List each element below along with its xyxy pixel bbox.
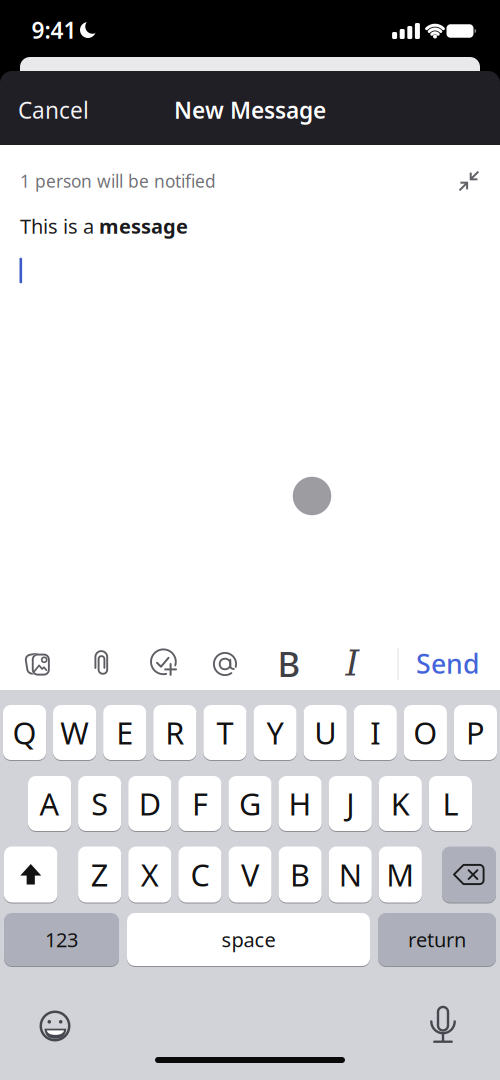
button[interactable]: Delete: [442, 846, 496, 903]
button[interactable]: G: [228, 775, 272, 831]
button[interactable]: Z: [78, 846, 121, 903]
staticText: E: [116, 712, 133, 753]
staticText: Z: [91, 854, 109, 895]
button[interactable]: Attach file: [91, 648, 111, 678]
staticText: G: [239, 783, 261, 824]
staticText: P: [466, 712, 485, 753]
button[interactable]: space: [127, 912, 370, 966]
staticText: A: [40, 783, 60, 824]
button[interactable]: Send: [416, 646, 480, 681]
button[interactable]: W: [53, 704, 96, 760]
button[interactable]: I: [354, 704, 397, 760]
button[interactable]: Y: [253, 704, 297, 760]
staticText: J: [346, 783, 354, 824]
staticText: L: [442, 783, 458, 824]
staticText: C: [190, 854, 209, 895]
button[interactable]: Add task: [150, 649, 180, 679]
button[interactable]: T: [203, 704, 247, 760]
button[interactable]: Emoji: [39, 1010, 71, 1042]
button[interactable]: U: [304, 704, 347, 760]
staticText: Cancel: [18, 95, 89, 125]
button[interactable]: A: [28, 775, 71, 831]
button[interactable]: N: [329, 846, 372, 903]
staticText: R: [165, 712, 184, 753]
staticText: This is a message: [20, 213, 188, 239]
button[interactable]: B: [278, 846, 322, 903]
staticText: New Message: [174, 95, 326, 125]
staticText: 1 person will be notified: [20, 169, 216, 192]
staticText: I: [370, 712, 380, 753]
button[interactable]: V: [228, 846, 272, 903]
button[interactable]: H: [278, 775, 322, 831]
button[interactable]: Dictate: [430, 1007, 456, 1043]
staticText: W: [60, 712, 89, 753]
button[interactable]: E: [103, 704, 146, 760]
button[interactable]: P: [454, 704, 497, 760]
button[interactable]: L: [429, 775, 472, 831]
button[interactable]: Shift: [4, 846, 57, 903]
staticText: return: [408, 926, 466, 953]
button[interactable]: Bold: [272, 646, 306, 680]
staticText: S: [91, 783, 108, 824]
button[interactable]: R: [153, 704, 196, 760]
button[interactable]: 123: [4, 912, 119, 966]
staticText: 123: [45, 926, 78, 953]
staticText: F: [192, 783, 208, 824]
staticText: Y: [267, 712, 284, 753]
button[interactable]: Q: [3, 704, 46, 760]
staticText: V: [241, 854, 259, 895]
button[interactable]: Cancel: [18, 95, 89, 125]
staticText: B: [290, 854, 310, 895]
staticText: O: [413, 712, 437, 753]
button[interactable]: Italic: [337, 646, 367, 680]
staticText: U: [314, 712, 336, 753]
staticText: K: [391, 783, 410, 824]
staticText: I: [345, 643, 359, 684]
button[interactable]: Add photo: [22, 647, 56, 681]
staticText: space: [221, 926, 275, 953]
staticText: D: [139, 783, 161, 824]
button[interactable]: Mention: [212, 651, 238, 677]
button[interactable]: return: [378, 912, 496, 966]
button[interactable]: K: [379, 775, 422, 831]
staticText: N: [339, 854, 362, 895]
button[interactable]: M: [379, 846, 422, 903]
staticText: T: [216, 712, 233, 753]
button[interactable]: Collapse: [456, 168, 482, 194]
button[interactable]: S: [78, 775, 121, 831]
staticText: 9:41: [31, 15, 76, 45]
button[interactable]: X: [128, 846, 171, 903]
button[interactable]: C: [178, 846, 221, 903]
staticText: B: [277, 640, 300, 686]
button[interactable]: F: [178, 775, 221, 831]
button[interactable]: D: [128, 775, 171, 831]
staticText: H: [289, 783, 312, 824]
button[interactable]: O: [404, 704, 447, 760]
button[interactable]: J: [329, 775, 372, 831]
staticText: Send: [416, 646, 480, 681]
staticText: M: [386, 854, 414, 895]
staticText: X: [141, 854, 159, 895]
staticText: Q: [13, 712, 37, 753]
